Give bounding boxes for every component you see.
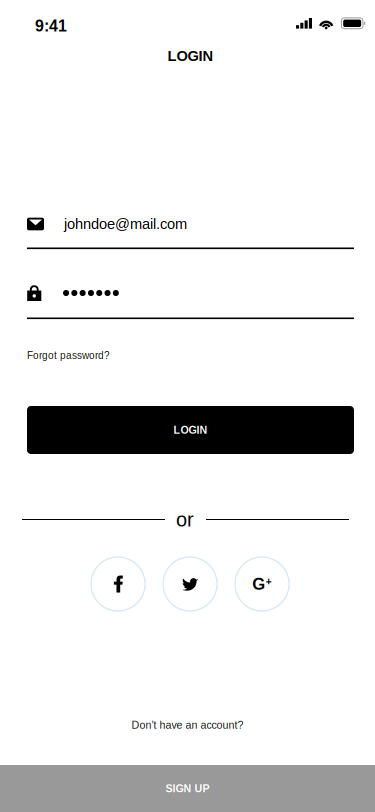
staticText: +	[266, 576, 272, 587]
staticText: G	[252, 575, 265, 593]
button[interactable]: Don’t have an account?	[0, 718, 375, 732]
button[interactable]: LOGIN	[27, 406, 354, 454]
button[interactable]: SIGN UP	[0, 765, 375, 812]
staticText: 9:41	[35, 17, 67, 35]
button[interactable]: Sign in with Google	[235, 557, 289, 611]
staticText: SIGN UP	[165, 782, 209, 794]
staticText: johndoe@mail.com	[64, 216, 187, 232]
staticText: Don’t have an account?	[131, 719, 243, 731]
staticText: Forgot password?	[27, 350, 110, 361]
staticText: or	[176, 508, 194, 531]
button[interactable]: Forgot password?	[27, 349, 110, 362]
button[interactable]: Sign in with Facebook	[91, 557, 145, 611]
staticText: LOGIN	[173, 424, 207, 436]
staticText: LOGIN	[167, 48, 213, 64]
button[interactable]: LOGIN	[27, 45, 354, 67]
button[interactable]: Sign in with Twitter	[163, 557, 217, 611]
